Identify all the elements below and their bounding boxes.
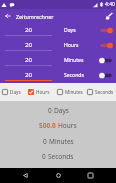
button[interactable]: Toggle bbox=[98, 55, 114, 66]
staticText: 20 bbox=[5, 26, 52, 34]
button[interactable]: Recent apps bbox=[83, 168, 98, 183]
staticText: Zeitumrechner bbox=[16, 13, 54, 20]
staticText: 0 bbox=[42, 152, 46, 161]
button[interactable]: Seconds bbox=[87, 83, 116, 101]
button[interactable]: Navigate up bbox=[0, 9, 16, 23]
staticText: Minutes bbox=[65, 89, 83, 95]
staticText: Seconds bbox=[64, 72, 84, 79]
button[interactable]: Clear bbox=[101, 9, 116, 23]
staticText: 20 bbox=[5, 56, 52, 64]
staticText: Seconds bbox=[48, 152, 74, 161]
staticText: Hours bbox=[64, 42, 79, 49]
staticText: Days bbox=[64, 27, 76, 34]
staticText: 20 bbox=[5, 41, 52, 49]
staticText: Days bbox=[54, 106, 69, 115]
button[interactable]: Toggle bbox=[98, 70, 114, 81]
staticText: 0 bbox=[43, 137, 47, 146]
staticText: Minutes bbox=[64, 57, 84, 64]
button[interactable]: Minutes bbox=[57, 83, 87, 101]
button[interactable]: Toggle bbox=[98, 40, 114, 51]
button[interactable]: Toggle bbox=[98, 25, 114, 36]
staticText: 500.0 bbox=[39, 121, 56, 130]
staticText: Days bbox=[10, 89, 21, 95]
staticText: Seconds bbox=[95, 89, 114, 95]
button[interactable]: Back bbox=[18, 168, 33, 183]
staticText: 4:40 bbox=[105, 1, 115, 8]
button[interactable]: Hours bbox=[28, 83, 57, 101]
button[interactable]: Home bbox=[51, 168, 66, 183]
staticText: 20 bbox=[5, 71, 52, 79]
staticText: Hours bbox=[36, 89, 50, 95]
staticText: 0 bbox=[48, 106, 52, 115]
staticText: Minutes bbox=[49, 137, 74, 146]
button[interactable]: Days bbox=[2, 83, 28, 101]
staticText: Hours bbox=[58, 121, 77, 130]
